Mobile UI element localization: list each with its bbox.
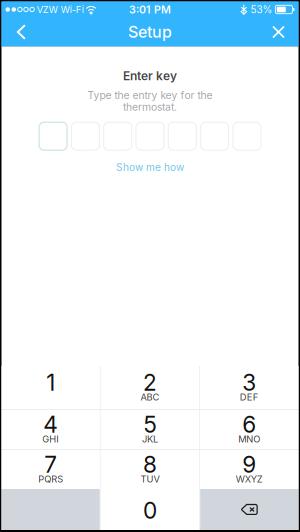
button[interactable]: 1 <box>1 366 100 409</box>
staticText: 2 <box>143 369 157 396</box>
button[interactable]: 6 <box>200 410 298 449</box>
button[interactable]: Entry key character 5 <box>168 122 196 150</box>
button[interactable]: 7 <box>1 450 100 489</box>
staticText: 0 <box>143 497 157 524</box>
button[interactable]: Entry key character 1 <box>39 122 67 150</box>
button[interactable]: 0 <box>101 489 199 530</box>
staticText: GHI <box>42 433 59 445</box>
button[interactable]: 8 <box>101 450 199 489</box>
staticText: 7 <box>44 451 57 478</box>
staticText: DEF <box>240 391 259 403</box>
button[interactable]: 9 <box>200 450 298 489</box>
button[interactable]: 5 <box>101 410 199 449</box>
button[interactable]: Close <box>261 17 295 46</box>
staticText: 3:01 PM <box>129 3 171 16</box>
staticText: PQRS <box>38 473 63 485</box>
button[interactable]: Show me how <box>106 157 194 177</box>
staticText: 8 <box>143 451 157 478</box>
button[interactable]: Entry key character 6 <box>201 122 229 150</box>
staticText: 53% <box>250 3 272 16</box>
button[interactable]: 2 <box>101 366 199 409</box>
staticText: 1 <box>46 369 55 396</box>
button[interactable]: 4 <box>1 410 100 449</box>
staticText: thermostat. <box>123 101 177 113</box>
staticText: WXYZ <box>236 473 263 485</box>
button[interactable]: Entry key character 7 <box>233 122 261 150</box>
button[interactable]: Delete <box>200 489 298 530</box>
staticText: MNO <box>238 433 260 445</box>
staticText: 6 <box>242 411 256 438</box>
staticText: Setup <box>128 22 172 42</box>
button[interactable]: 3 <box>200 366 298 409</box>
staticText: 9 <box>242 451 256 478</box>
staticText: 5 <box>143 411 156 438</box>
staticText: Enter key <box>123 68 177 83</box>
button[interactable]: Entry key character 2 <box>71 122 99 150</box>
staticText: 4 <box>43 411 58 438</box>
staticText: ABC <box>140 391 159 403</box>
button[interactable]: Entry key character 3 <box>104 122 132 150</box>
staticText: Type the entry key for the <box>87 89 212 102</box>
staticText: TUV <box>140 473 159 485</box>
staticText: JKL <box>142 433 158 445</box>
button[interactable]: Back <box>4 17 38 46</box>
staticText: VZW Wi-Fi <box>37 4 84 15</box>
button[interactable]: Entry key character 4 <box>136 122 164 150</box>
staticText: 3 <box>242 369 256 396</box>
staticText: Show me how <box>116 161 184 173</box>
